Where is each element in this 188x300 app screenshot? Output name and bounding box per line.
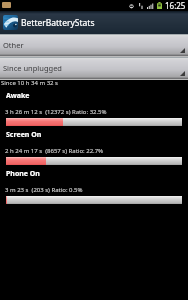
button[interactable]: Other — [0, 34, 188, 57]
button[interactable]: BetterBatteryStats — [0, 11, 188, 34]
button[interactable]: Awake — [0, 88, 188, 127]
button[interactable]: Phone On — [0, 166, 188, 205]
staticText: 3 m 23 s (203 s) Ratio: 0.5% — [5, 186, 83, 194]
button[interactable]: Screen On — [0, 127, 188, 166]
staticText: 3 h 26 m 12 s (12372 s) Ratio: 32.5% — [5, 108, 107, 116]
staticText: Since 10 h 34 m 32 s — [1, 79, 58, 87]
staticText: Since unplugged — [3, 63, 62, 73]
staticText: Screen On — [6, 130, 42, 140]
button[interactable]: Since unplugged — [0, 57, 188, 80]
staticText: Awake — [6, 91, 30, 101]
staticText: Phone On — [6, 169, 40, 179]
staticText: 2 h 24 m 17 s (8657 s) Ratio: 22.7% — [5, 147, 104, 155]
staticText: Other — [3, 40, 24, 50]
staticText: BetterBatteryStats — [21, 17, 95, 29]
staticText: 16:25 — [165, 0, 186, 11]
